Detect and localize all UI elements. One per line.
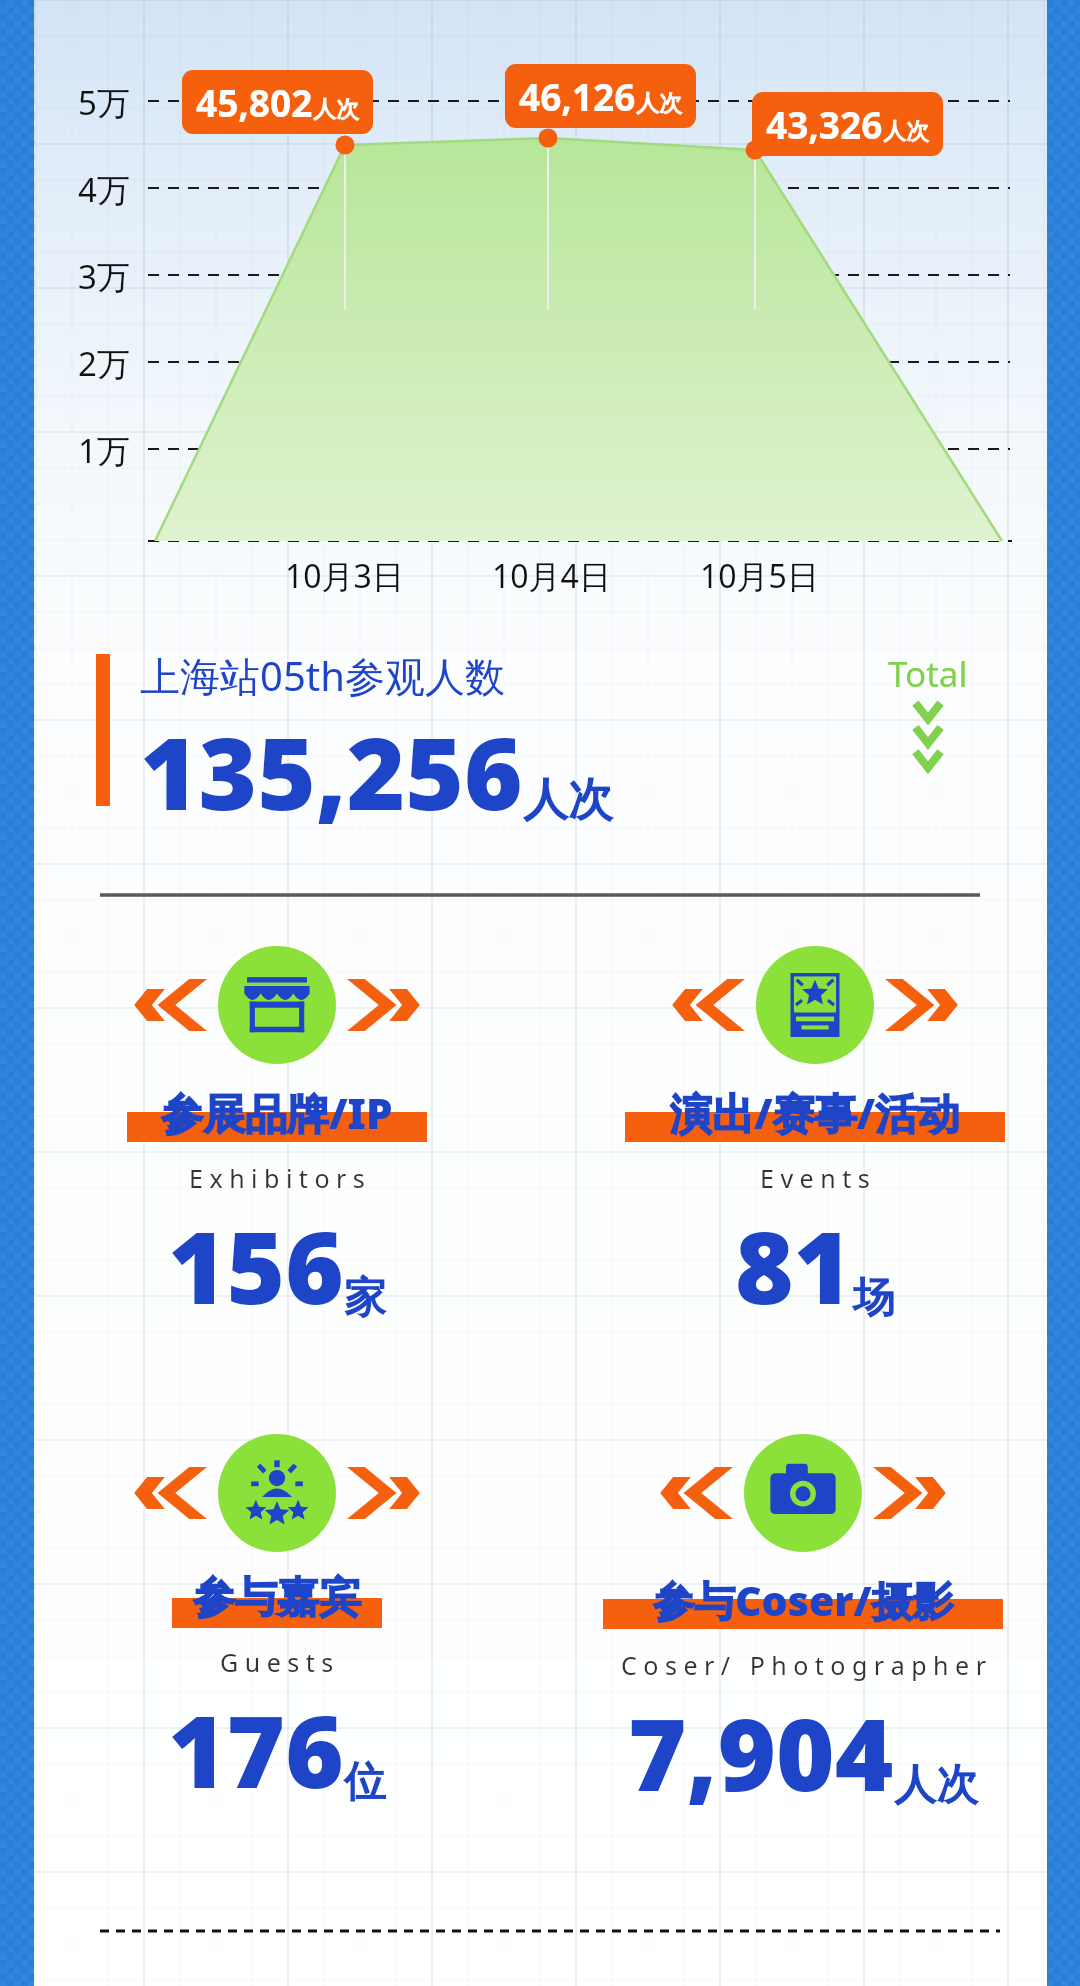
staticText: E v e n t s [760, 1161, 870, 1195]
button[interactable]: Events [548, 946, 1080, 1333]
button[interactable]: 上海站05th参观人数 [96, 648, 613, 839]
button[interactable]: 45,802 [182, 70, 373, 134]
staticText: 参与嘉宾 [193, 1572, 361, 1625]
staticText: 家 [344, 1272, 386, 1325]
staticText: 场 [853, 1272, 895, 1325]
staticText: 81 [735, 1197, 853, 1333]
staticText: 参与Coser/摄影 [653, 1572, 954, 1628]
staticText: 10月5日 [700, 554, 819, 598]
staticText: 45,802 [196, 77, 313, 127]
staticText: G u e s t s [220, 1645, 334, 1679]
staticText: 人次 [523, 772, 613, 829]
staticText: C o s e r / P h o t o g r a p h e r [621, 1648, 986, 1682]
staticText: 上海站05th参观人数 [140, 648, 505, 703]
staticText: 人次 [883, 117, 929, 146]
staticText: 3万 [78, 254, 130, 299]
staticText: 4万 [78, 167, 130, 212]
staticText: 人次 [636, 89, 682, 118]
staticText: 演出/赛事/活动 [670, 1084, 960, 1141]
staticText: 人次 [313, 95, 359, 124]
button[interactable]: Guests [10, 1434, 544, 1817]
staticText: 位 [344, 1756, 386, 1809]
staticText: Total [888, 650, 968, 698]
staticText: 10月4日 [492, 554, 611, 598]
staticText: 2万 [78, 341, 130, 386]
staticText: 10月3日 [285, 554, 404, 598]
staticText: 参展品牌/IP [161, 1084, 393, 1141]
button[interactable]: Exhibitors [10, 946, 544, 1333]
staticText: 7,904 [628, 1684, 894, 1820]
other: Guests [218, 1434, 336, 1552]
staticText: E x h i b i t o r s [189, 1161, 365, 1195]
button[interactable]: 43,326 [752, 92, 943, 156]
staticText: 5万 [78, 80, 130, 125]
staticText: 43,326 [766, 99, 883, 149]
staticText: 1万 [78, 428, 130, 473]
staticText: 人次 [894, 1759, 978, 1812]
button[interactable]: Coser/ Photographer [536, 1434, 1070, 1820]
other: Exhibitors [218, 946, 336, 1064]
staticText: 176 [168, 1681, 344, 1817]
staticText: 135,256 [140, 703, 523, 839]
other: Events [756, 946, 874, 1064]
other: Coser/ Photographer [744, 1434, 862, 1552]
staticText: 46,126 [519, 71, 636, 121]
staticText: 156 [168, 1197, 344, 1333]
button[interactable]: 46,126 [505, 64, 696, 128]
